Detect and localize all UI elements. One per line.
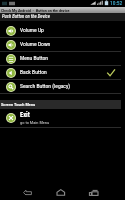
staticText: 10:52 [110,0,123,6]
button[interactable]: Back Button [0,66,125,79]
staticText: Check My Android - Button on the device [1,8,70,13]
staticText: Search Button (legacy) [20,83,71,90]
staticText: Screen Touch Menu [1,102,36,107]
staticText: go to Main Menu [20,120,50,125]
staticText: Back Button [20,69,47,76]
button[interactable]: Volume Down [0,38,125,51]
button[interactable]: Recent apps [83,180,105,200]
staticText: Volume Up [20,27,44,34]
button[interactable]: Back [17,180,39,200]
button[interactable]: Home [50,180,72,200]
staticText: Menu Button [20,55,49,62]
button[interactable]: Menu Button [0,52,125,65]
staticText: Exit [20,111,30,119]
button[interactable]: Search Button (legacy) [0,80,125,93]
button[interactable]: Exit [0,109,125,127]
button[interactable]: Volume Up [0,24,125,37]
staticText: Volume Down [20,41,51,48]
staticText: Push Button on the Device [2,14,50,20]
